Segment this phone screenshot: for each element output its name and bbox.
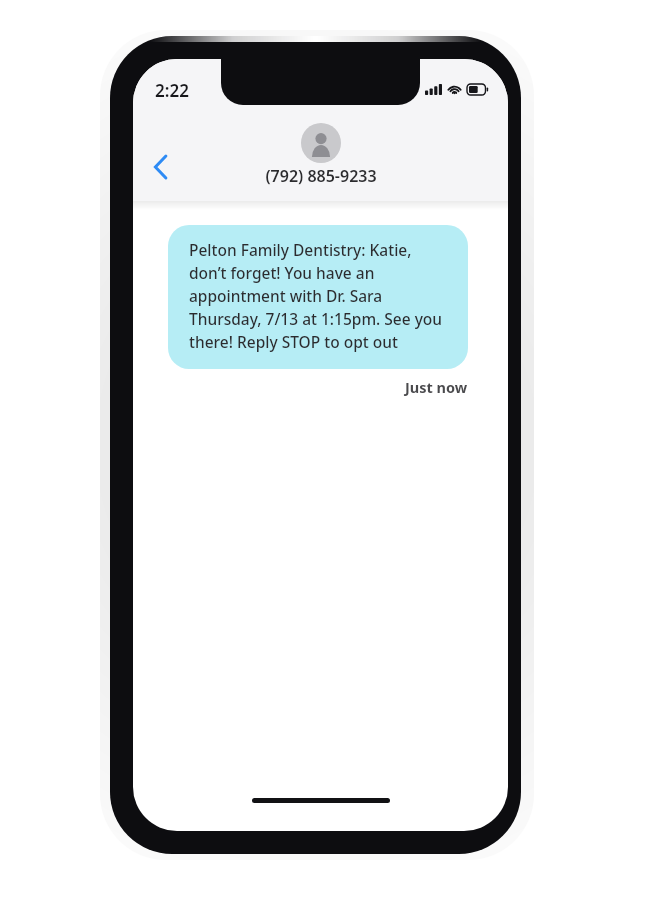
staticText: Pelton Family Dentistry: Katie, don’t fo… — [189, 239, 450, 353]
staticText: (792) 885-9233 — [265, 165, 377, 187]
button[interactable]: Pelton Family Dentistry: Katie, don’t fo… — [168, 225, 468, 369]
staticText: Just now — [405, 377, 468, 397]
staticText: 2:22 — [155, 79, 189, 102]
button[interactable]: Back — [139, 145, 183, 189]
